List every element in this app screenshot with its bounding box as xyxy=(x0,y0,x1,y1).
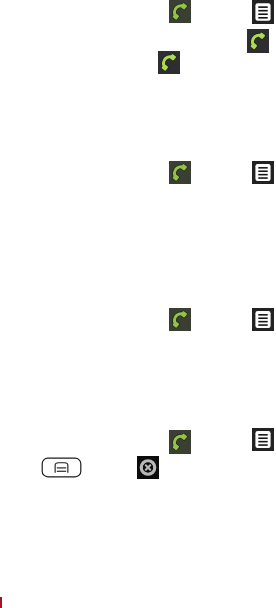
button[interactable]: Call xyxy=(247,29,269,53)
button[interactable]: Call details xyxy=(252,428,274,451)
button[interactable]: Call xyxy=(158,51,180,74)
button[interactable]: Call details xyxy=(252,0,274,24)
button[interactable]: Call xyxy=(169,161,191,184)
button[interactable]: Call xyxy=(169,430,191,454)
button[interactable]: Call details xyxy=(252,308,274,331)
button[interactable]: Call xyxy=(169,308,191,331)
button[interactable]: Cancel xyxy=(137,456,159,479)
button[interactable]: Call xyxy=(169,0,191,23)
button[interactable]: Send message xyxy=(41,457,82,478)
button[interactable]: Call details xyxy=(252,161,274,184)
